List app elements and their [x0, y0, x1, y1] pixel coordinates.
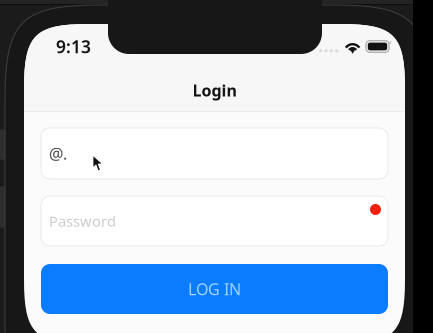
- staticText: Login: [192, 80, 236, 101]
- staticText: 9:13: [56, 35, 91, 58]
- button[interactable]: Password: [41, 196, 388, 246]
- staticText: LOG IN: [188, 278, 241, 300]
- staticText: Password: [49, 211, 116, 231]
- button[interactable]: LOG IN: [41, 264, 388, 314]
- button[interactable]: @.: [41, 128, 388, 179]
- staticText: @.: [49, 143, 67, 164]
